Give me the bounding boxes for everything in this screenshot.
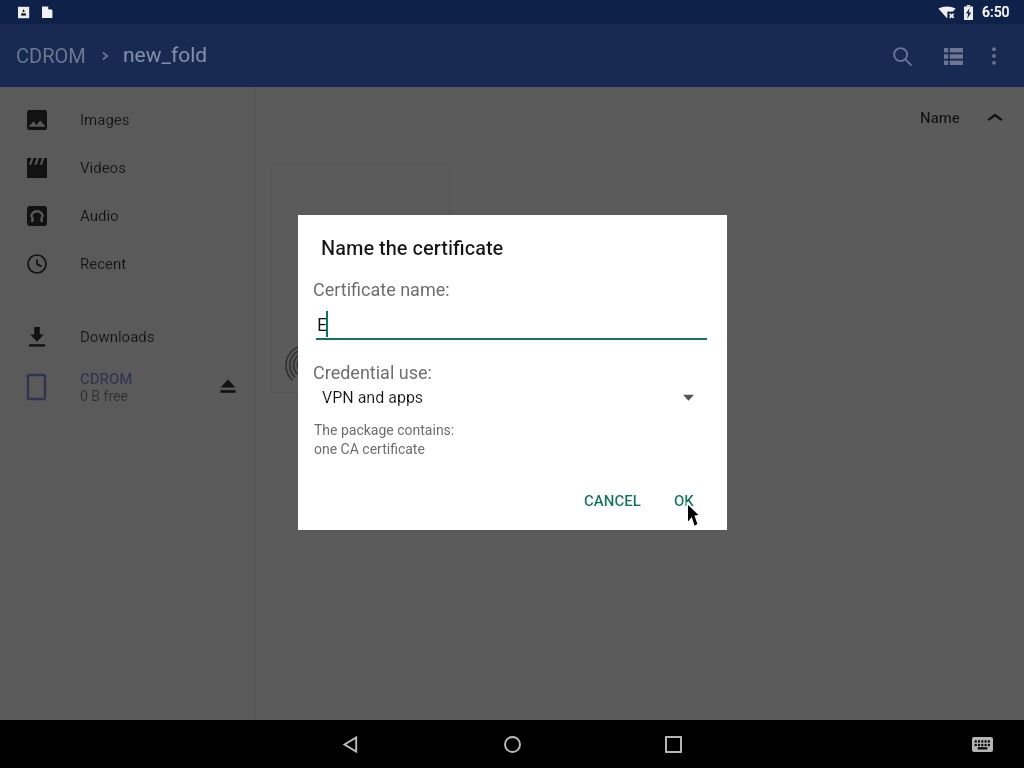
staticText: one CA certificate [314, 441, 425, 457]
button[interactable]: View as list [929, 32, 977, 80]
staticText: 6:50 [982, 4, 1010, 20]
button[interactable] [271, 164, 450, 393]
staticText: E [317, 314, 328, 335]
staticText: Videos [80, 159, 126, 177]
button[interactable]: CDROM [0, 363, 256, 413]
button[interactable]: Back [326, 720, 374, 768]
button[interactable]: Images [0, 96, 256, 144]
button[interactable]: CANCEL [577, 483, 647, 519]
button[interactable]: Downloads [0, 313, 256, 361]
button[interactable]: Search [878, 32, 926, 80]
staticText: Images [80, 111, 130, 129]
button[interactable]: CDROM [16, 44, 86, 67]
button[interactable]: Switch keyboard [958, 720, 1006, 768]
staticText: VPN and apps [322, 388, 424, 407]
button[interactable]: Eject [208, 366, 248, 406]
staticText: CDROM [80, 370, 133, 388]
staticText: Credential use: [313, 362, 432, 383]
button[interactable]: new_fold [123, 43, 208, 68]
staticText: Name [920, 109, 960, 127]
staticText: OK [674, 492, 694, 510]
button[interactable]: Recent [0, 240, 256, 288]
button[interactable]: VPN and apps [298, 383, 727, 411]
button[interactable]: More options [970, 32, 1018, 80]
button[interactable]: Audio [0, 192, 256, 240]
staticText: Audio [80, 207, 119, 225]
staticText: Recent [80, 255, 127, 273]
staticText: Certificate name: [313, 279, 450, 300]
staticText: Downloads [80, 328, 155, 346]
staticText: Name the certificate [321, 236, 504, 259]
button[interactable]: Name [920, 109, 1004, 127]
button[interactable]: Videos [0, 144, 256, 192]
staticText: 0 B free [80, 388, 128, 404]
staticText: CANCEL [584, 492, 641, 510]
staticText: The package contains: [314, 422, 455, 438]
button[interactable]: OK [665, 483, 703, 519]
button[interactable]: Home [488, 720, 536, 768]
button[interactable]: Recent apps [649, 720, 697, 768]
